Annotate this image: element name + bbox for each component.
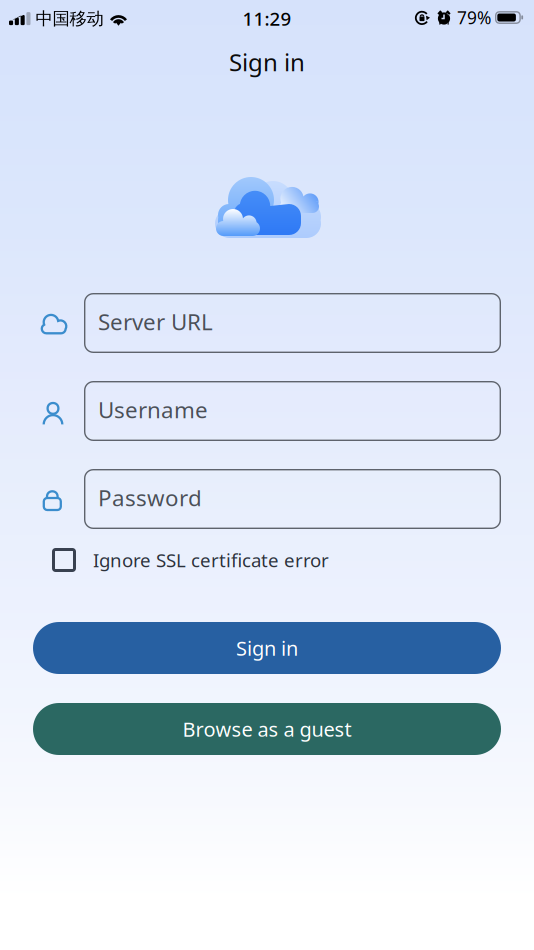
staticText: Browse as a guest xyxy=(182,716,351,742)
button[interactable]: Ignore SSL certificate error xyxy=(52,540,362,580)
staticText: Server URL xyxy=(98,306,213,337)
button[interactable]: Sign in xyxy=(33,622,501,674)
staticText: 11:29 xyxy=(242,6,291,31)
staticText: 79% xyxy=(457,6,491,29)
staticText: Ignore SSL certificate error xyxy=(93,548,329,572)
staticText: Username xyxy=(98,394,208,425)
staticText: Sign in xyxy=(229,46,305,78)
staticText: Sign in xyxy=(236,635,298,661)
staticText: 中国移动 xyxy=(35,8,103,29)
staticText: Password xyxy=(98,482,202,513)
button[interactable]: Browse as a guest xyxy=(33,703,501,755)
